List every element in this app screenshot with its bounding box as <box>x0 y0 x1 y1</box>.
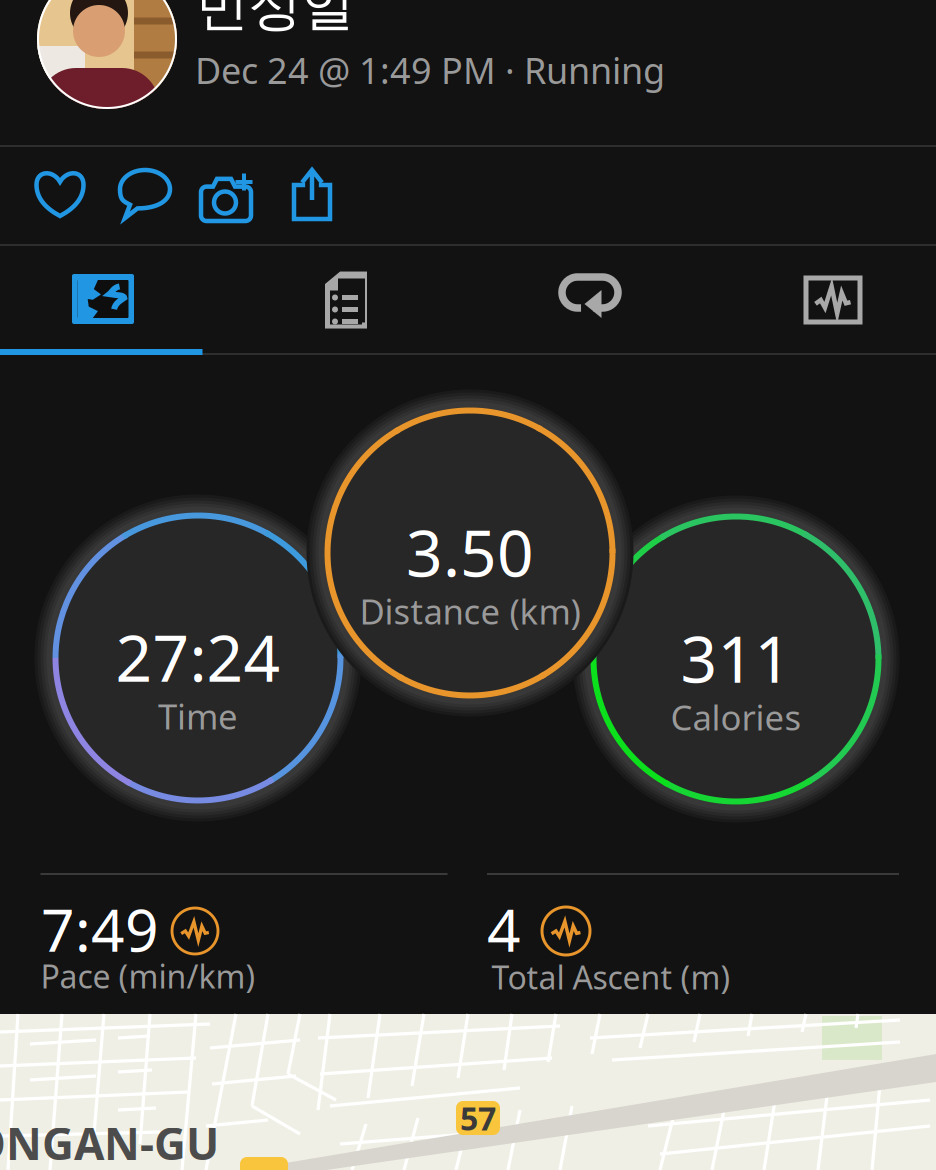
button[interactable]: Laps <box>490 244 690 348</box>
staticText: 민성일 <box>195 0 354 39</box>
staticText: Time <box>158 693 238 739</box>
staticText: Dec 24 @ 1:49 PM · Running <box>195 46 665 94</box>
staticText: Total Ascent (m) <box>491 956 730 998</box>
button[interactable]: Share <box>270 145 354 243</box>
staticText: ONGAN-GU <box>0 1114 219 1170</box>
staticText: 27:24 <box>115 614 280 699</box>
staticText: 7:49 <box>41 890 159 968</box>
button[interactable]: Add photo <box>187 146 271 244</box>
button[interactable]: Map <box>3 247 203 351</box>
button[interactable]: Comment <box>103 145 187 243</box>
button[interactable]: Details <box>246 248 446 352</box>
staticText: 4 <box>487 890 521 968</box>
staticText: 3.50 <box>406 509 534 594</box>
staticText: Calories <box>670 694 801 740</box>
button[interactable]: Heart rate <box>733 248 933 352</box>
staticText: Distance (km) <box>359 588 580 634</box>
button[interactable]: Like <box>18 145 102 243</box>
staticText: 311 <box>680 615 791 700</box>
staticText: Pace (min/km) <box>40 955 255 997</box>
staticText: 57 <box>460 1097 496 1139</box>
